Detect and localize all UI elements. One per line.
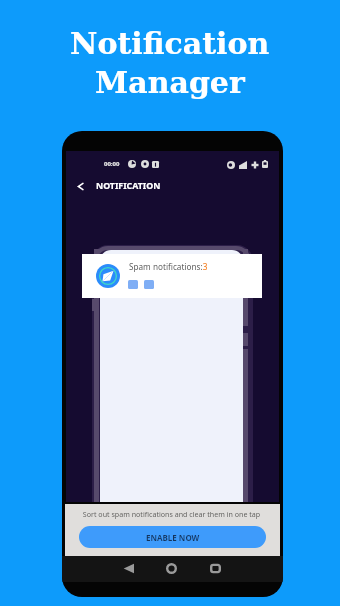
button[interactable]: ENABLE NOW [79, 526, 266, 548]
button[interactable]: Recents [205, 558, 225, 578]
staticText: Notification [70, 26, 270, 61]
staticText: ENABLE NOW [146, 532, 200, 543]
button[interactable]: Back [71, 177, 89, 195]
staticText: Manager [95, 65, 245, 100]
button[interactable]: Back [118, 558, 138, 578]
staticText: Spam notifications:3 [129, 261, 208, 272]
staticText: 00:00 [104, 160, 120, 168]
button[interactable]: Home [161, 558, 181, 578]
staticText: Sort out spam notifications and clear th… [64, 509, 279, 519]
staticText: NOTIFICATION [96, 180, 161, 192]
